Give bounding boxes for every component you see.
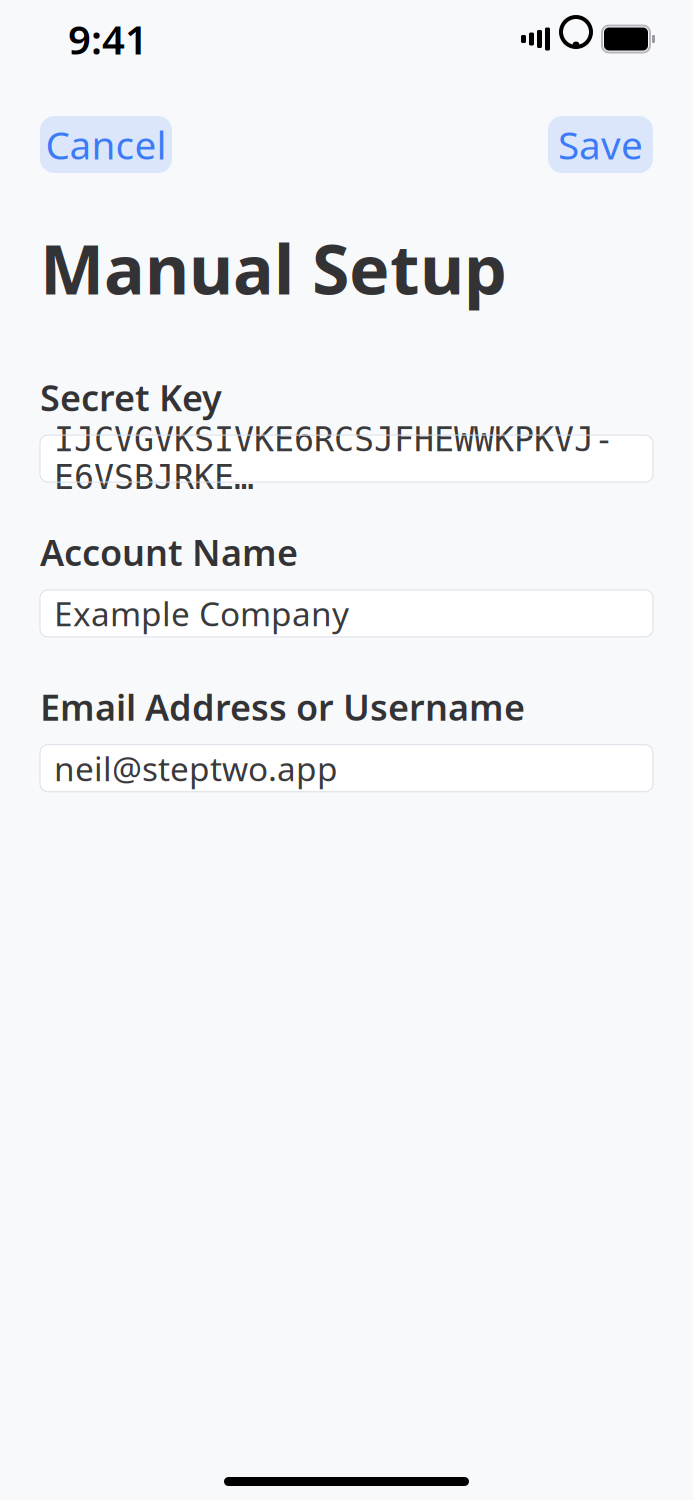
staticText: Secret Key [40,373,222,421]
staticText: IJCVGVKSIVKE6RCSJFHEWWKPKVJE6VSBJRKE… [54,421,614,496]
staticText: Manual Setup [40,223,507,313]
staticText: 9:41 [68,12,148,65]
staticText: Example Company [54,591,349,636]
staticText: Account Name [40,528,298,576]
button[interactable]: Cancel [40,116,172,173]
button[interactable]: Save [548,116,653,173]
staticText: Save [558,119,643,170]
staticText: Email Address or Username [40,683,525,731]
staticText: Cancel [45,119,166,170]
staticText: neil@steptwo.app [54,746,338,790]
